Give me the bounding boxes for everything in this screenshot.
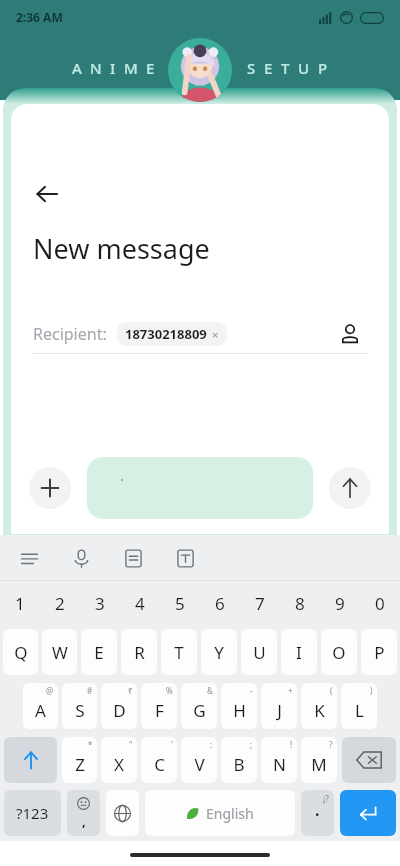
staticText: A — [72, 58, 82, 78]
button[interactable]: Add attachment — [29, 467, 71, 509]
staticText: Y — [214, 641, 224, 664]
staticText: T — [174, 641, 184, 664]
button[interactable]: ?123 — [4, 790, 61, 836]
staticText: S — [75, 699, 85, 722]
button[interactable]: ' — [141, 737, 177, 783]
button[interactable]: Menu — [14, 543, 44, 573]
button[interactable]: * — [62, 737, 97, 783]
staticText: J — [277, 699, 282, 722]
staticText: Q — [14, 641, 28, 664]
button[interactable]: W — [42, 629, 77, 675]
button[interactable]: : — [181, 737, 217, 783]
button[interactable]: 4 — [120, 581, 160, 625]
button[interactable]: & — [181, 683, 217, 729]
button[interactable]: 3 — [80, 581, 120, 625]
button[interactable]: Pick contact — [333, 317, 367, 351]
staticText: ) — [370, 685, 373, 696]
staticText: A — [35, 699, 46, 722]
button[interactable]: - — [221, 683, 257, 729]
button[interactable]: ! — [261, 737, 297, 783]
button[interactable]: 8 — [280, 581, 320, 625]
staticText: V — [194, 753, 205, 776]
staticText: P — [318, 58, 328, 78]
button[interactable]: R — [121, 629, 157, 675]
staticText: ' — [171, 739, 173, 750]
button[interactable]: U — [241, 629, 277, 675]
button[interactable]: Voice input — [66, 543, 96, 573]
staticText: F — [155, 699, 164, 722]
button[interactable]: Back — [25, 172, 69, 216]
staticText: G — [193, 699, 206, 722]
button[interactable]: Enter — [340, 790, 396, 836]
staticText: # — [87, 685, 93, 696]
button[interactable]: Emoji and comma — [67, 790, 100, 836]
staticText: C — [154, 753, 165, 776]
button[interactable]: Recipient: — [33, 315, 367, 353]
button[interactable]: Backspace — [342, 737, 396, 783]
button[interactable]: Clipboard — [118, 543, 148, 573]
staticText: X — [114, 753, 124, 776]
button[interactable]: O — [321, 629, 357, 675]
button[interactable]: + — [261, 683, 297, 729]
button[interactable]: 9 — [320, 581, 360, 625]
staticText: , — [82, 812, 86, 830]
button[interactable]: 5 — [160, 581, 200, 625]
staticText: I — [296, 641, 302, 664]
button[interactable]: ; — [221, 737, 257, 783]
button[interactable]: 2 — [40, 581, 80, 625]
button[interactable]: Period — [301, 790, 334, 836]
button[interactable]: 0 — [360, 581, 400, 625]
button[interactable]: ₹ — [101, 683, 137, 729]
staticText: ?123 — [16, 803, 49, 823]
staticText: . — [315, 799, 320, 821]
staticText: D — [113, 699, 126, 722]
staticText: - — [250, 685, 253, 696]
staticText: 2 — [55, 592, 65, 615]
button[interactable]: 1 — [0, 581, 40, 625]
staticText: L — [355, 699, 364, 722]
button[interactable]: @ — [23, 683, 58, 729]
button[interactable]: Text editing — [170, 543, 200, 573]
button[interactable]: # — [62, 683, 97, 729]
staticText: B — [233, 753, 245, 776]
staticText: O — [332, 641, 346, 664]
button[interactable]: " — [101, 737, 137, 783]
button[interactable]: 6 — [200, 581, 240, 625]
staticText: T — [281, 58, 290, 78]
staticText: ; — [250, 739, 253, 750]
button[interactable]: T — [161, 629, 197, 675]
staticText: N — [90, 58, 102, 78]
button[interactable]: Shift — [4, 737, 57, 783]
staticText: 6 — [215, 592, 225, 615]
staticText: ? — [329, 739, 333, 750]
button[interactable]: % — [141, 683, 177, 729]
staticText: Z — [75, 753, 85, 776]
button[interactable]: Q — [3, 629, 38, 675]
button[interactable]: E — [81, 629, 117, 675]
button[interactable]: English — [145, 790, 295, 836]
staticText: ¡? — [323, 793, 329, 804]
staticText: K — [314, 699, 325, 722]
button[interactable]: Profile avatar — [168, 38, 232, 102]
button[interactable]: Send — [329, 467, 371, 509]
staticText: M — [124, 58, 138, 78]
button[interactable]: 7 — [240, 581, 280, 625]
button[interactable]: P — [361, 629, 397, 675]
staticText: W — [52, 641, 68, 664]
button[interactable]: ? — [301, 737, 337, 783]
staticText: ( — [330, 685, 333, 696]
button[interactable]: I — [281, 629, 317, 675]
staticText: & — [207, 685, 213, 696]
staticText: H — [233, 699, 246, 722]
button[interactable]: Change language — [106, 790, 139, 836]
staticText: 7 — [255, 592, 265, 615]
staticText: Recipient: — [33, 323, 107, 345]
button[interactable]: ) — [341, 683, 377, 729]
staticText: P — [374, 641, 385, 664]
staticText: ! — [290, 739, 293, 750]
staticText: 18730218809 — [125, 325, 207, 343]
staticText: I — [110, 58, 116, 78]
button[interactable]: ( — [301, 683, 337, 729]
button[interactable] — [87, 457, 313, 519]
button[interactable]: Y — [201, 629, 237, 675]
